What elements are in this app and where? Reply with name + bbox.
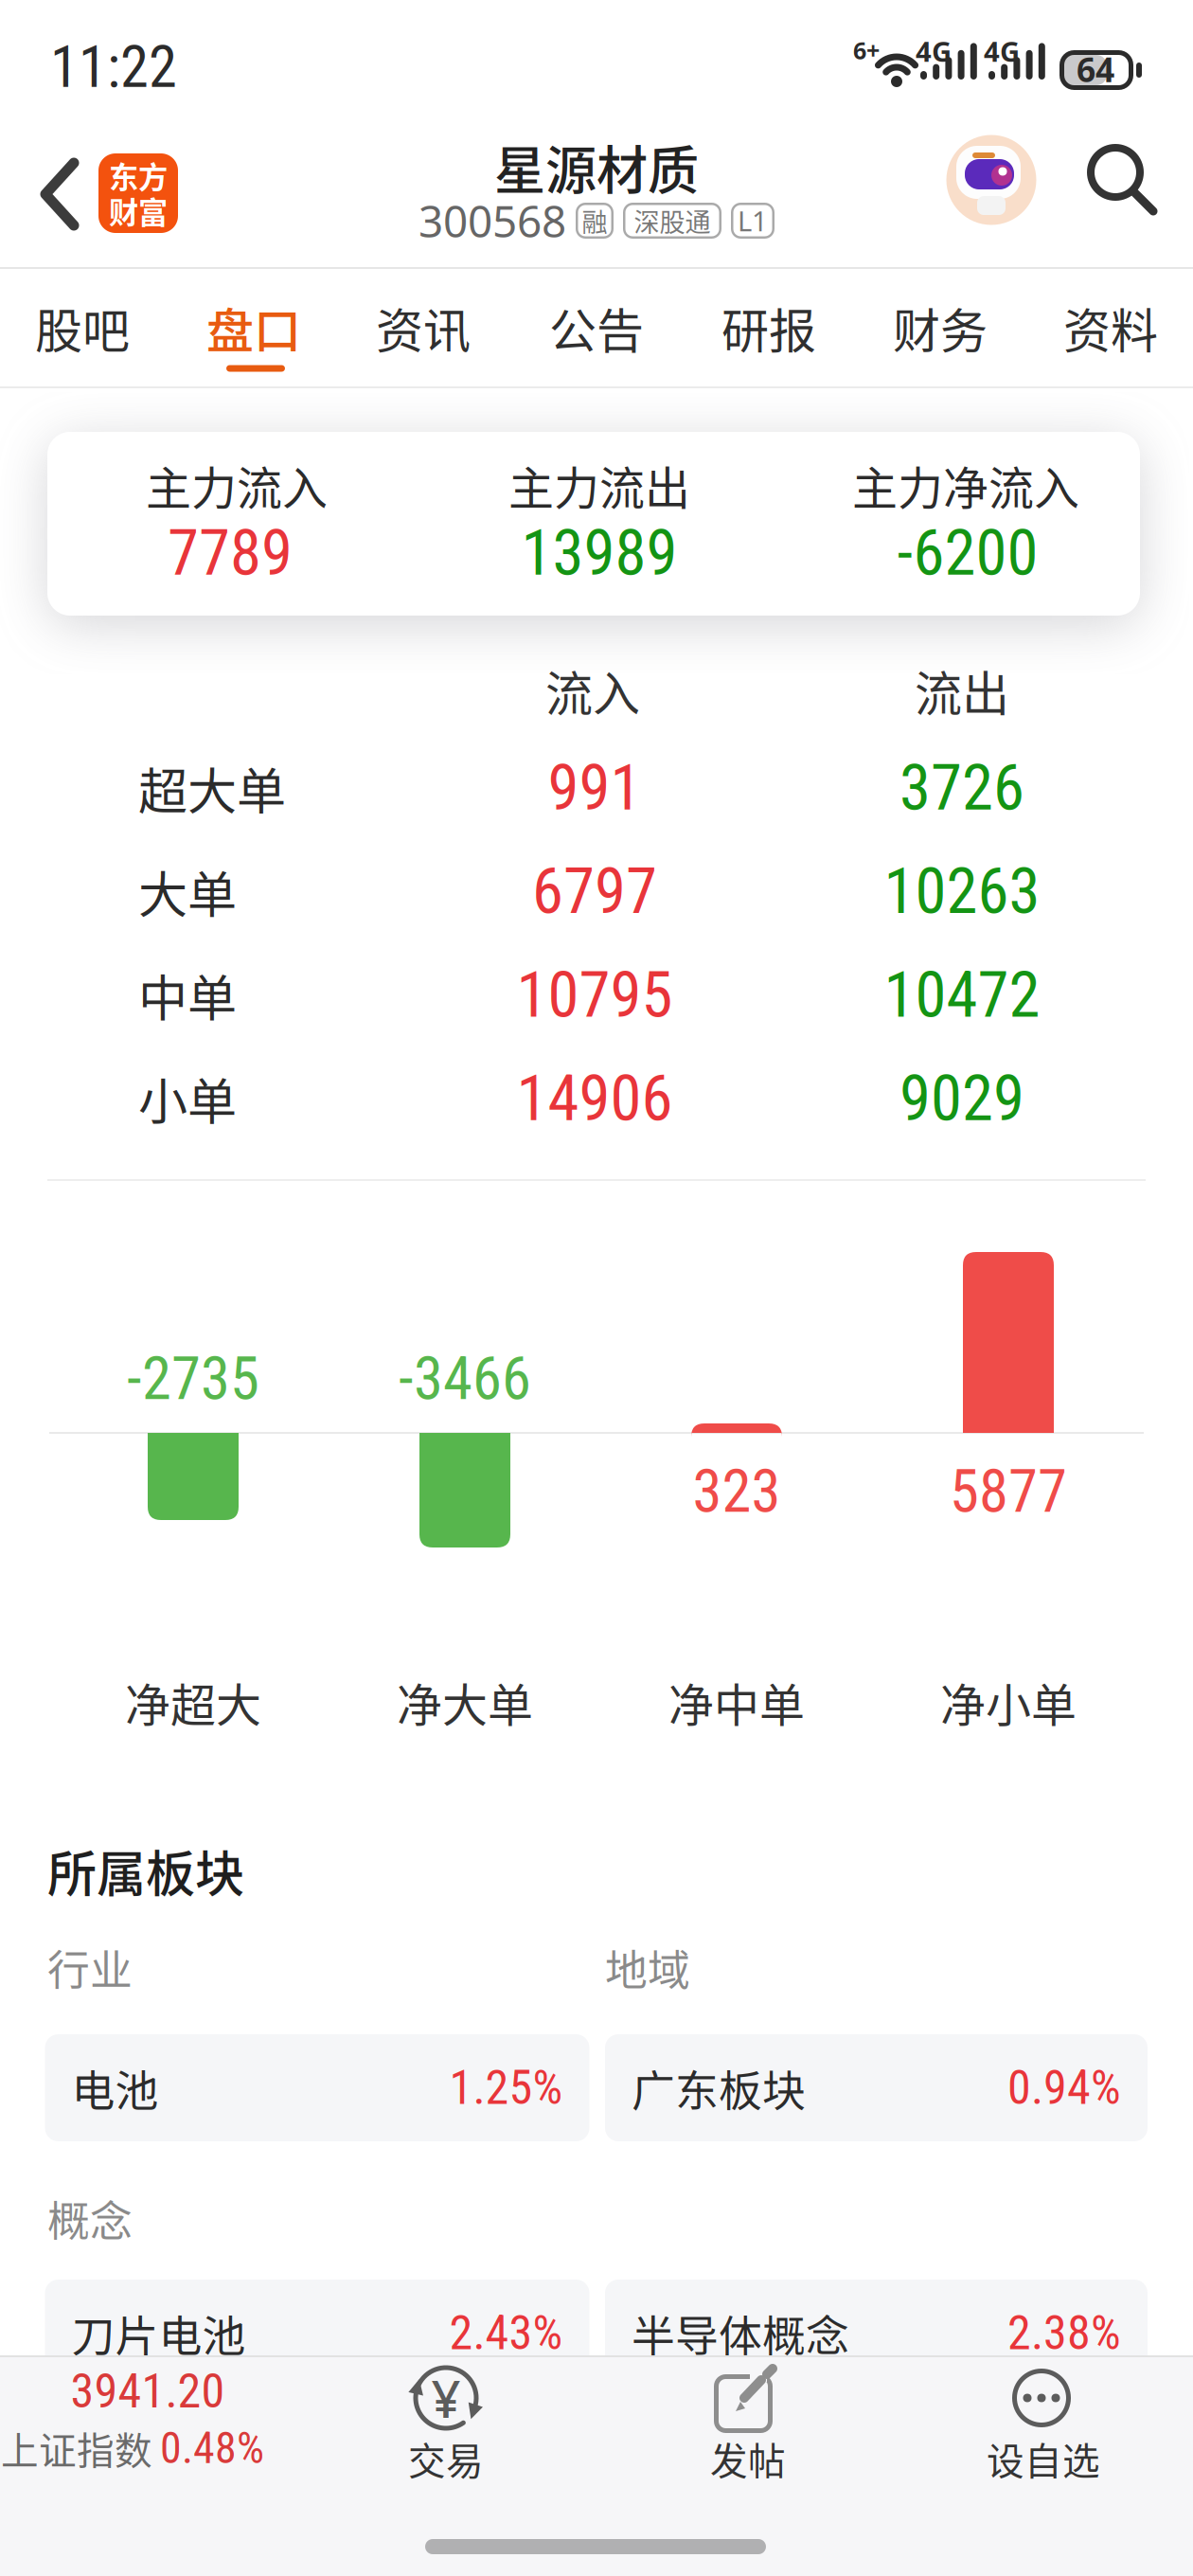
- staticText: 所属板块: [47, 1835, 244, 1906]
- staticText: 广东板块: [632, 2056, 806, 2119]
- staticText: 行业: [47, 1936, 133, 1998]
- staticText: 地域: [605, 1936, 690, 1998]
- staticText: 财务: [893, 293, 988, 362]
- button[interactable]: Search: [1077, 134, 1168, 225]
- staticText: 10795: [516, 958, 673, 1032]
- staticText: 电池: [71, 2056, 159, 2119]
- staticText: 小单: [138, 1063, 237, 1134]
- staticText: 盘口: [206, 293, 301, 362]
- staticText: 323: [693, 1457, 781, 1526]
- staticText: 深股通: [634, 202, 711, 239]
- staticText: 发帖: [710, 2431, 786, 2486]
- button[interactable]: 发帖: [691, 2348, 805, 2509]
- staticText: 2.43%: [449, 2305, 563, 2361]
- staticText: 1.25%: [449, 2060, 563, 2116]
- staticText: 净小单: [940, 1669, 1077, 1735]
- staticText: 超大单: [138, 752, 286, 824]
- staticText: 主力流出: [508, 452, 690, 518]
- button[interactable]: 研报: [698, 284, 840, 371]
- button[interactable]: 公告: [525, 284, 668, 371]
- staticText: 2.38%: [1007, 2305, 1121, 2361]
- staticText: 星源材质: [494, 130, 699, 204]
- staticText: 半导体概念: [632, 2302, 849, 2365]
- staticText: 4G: [916, 32, 952, 70]
- staticText: 概念: [47, 2187, 133, 2249]
- staticText: 6+: [853, 34, 880, 66]
- staticText: 4G: [984, 32, 1020, 70]
- staticText: 10472: [884, 958, 1040, 1032]
- staticText: 上证指数: [1, 2421, 152, 2475]
- button[interactable]: 资料: [1040, 284, 1182, 371]
- staticText: ¥: [431, 2363, 461, 2433]
- staticText: 5877: [950, 1457, 1067, 1526]
- staticText: 0.94%: [1007, 2060, 1121, 2116]
- button[interactable]: Assistant: [946, 135, 1036, 225]
- staticText: 中单: [138, 959, 237, 1031]
- staticText: 64: [1077, 46, 1114, 92]
- staticText: 11:22: [50, 34, 177, 101]
- staticText: 股吧: [35, 293, 130, 362]
- staticText: 7789: [168, 516, 293, 590]
- button[interactable]: 设自选: [968, 2348, 1119, 2509]
- button[interactable]: Back: [0, 0, 57, 85]
- staticText: 13989: [521, 516, 677, 590]
- staticText: 财富: [109, 189, 168, 232]
- staticText: 3941.20: [71, 2364, 225, 2419]
- staticText: 300568: [418, 191, 566, 250]
- staticText: 流入: [545, 656, 640, 725]
- button[interactable]: 半导体概念: [605, 2280, 1148, 2387]
- staticText: 净超大: [125, 1669, 261, 1735]
- staticText: 交易: [408, 2431, 484, 2486]
- staticText: 主力净流入: [852, 452, 1079, 518]
- staticText: 14906: [516, 1061, 673, 1135]
- button[interactable]: ¥: [389, 2348, 503, 2509]
- staticText: 流出: [915, 656, 1009, 725]
- staticText: 6797: [532, 854, 657, 928]
- staticText: L1: [738, 202, 768, 239]
- staticText: -2735: [127, 1344, 259, 1414]
- staticText: -3466: [399, 1344, 531, 1414]
- button[interactable]: 资讯: [352, 284, 494, 371]
- button[interactable]: 3941.20: [4, 2356, 288, 2546]
- button[interactable]: 广东板块: [605, 2034, 1148, 2141]
- staticText: 991: [548, 751, 641, 825]
- staticText: 净中单: [668, 1669, 805, 1735]
- staticText: 资料: [1063, 293, 1158, 362]
- button[interactable]: 刀片电池: [45, 2280, 589, 2387]
- staticText: 3726: [899, 751, 1024, 825]
- button[interactable]: 股吧: [11, 284, 153, 371]
- button[interactable]: 财务: [869, 284, 1011, 371]
- button[interactable]: 电池: [45, 2034, 589, 2141]
- staticText: 设自选: [987, 2431, 1100, 2486]
- staticText: -6200: [897, 516, 1038, 590]
- button[interactable]: 盘口: [183, 284, 325, 371]
- staticText: 资讯: [376, 293, 471, 362]
- button[interactable]: 东方财富: [98, 153, 178, 233]
- staticText: 东方: [109, 154, 168, 197]
- staticText: 净大单: [397, 1669, 533, 1735]
- staticText: 公告: [549, 293, 644, 362]
- staticText: 9029: [899, 1061, 1024, 1135]
- staticText: 研报: [721, 293, 816, 362]
- staticText: 大单: [138, 856, 237, 927]
- staticText: 主力流入: [146, 452, 328, 518]
- staticText: 刀片电池: [71, 2302, 246, 2365]
- staticText: 0.48%: [160, 2423, 264, 2474]
- staticText: 10263: [884, 854, 1040, 928]
- staticText: 融: [582, 202, 607, 239]
